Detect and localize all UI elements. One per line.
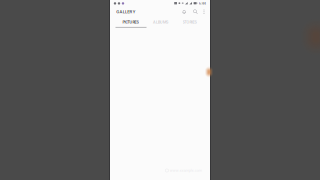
button[interactable]: PICTURES [122,20,138,24]
button[interactable]: Search [193,9,198,14]
staticText: STORIES [182,20,196,24]
button[interactable]: GALLERY [116,9,136,14]
staticText: www.example.com [170,168,202,173]
staticText: PICTURES [122,20,138,24]
button[interactable]: ALBUMS [153,20,168,24]
staticText: GALLERY [116,9,136,14]
button[interactable]: STORIES [182,20,196,24]
staticText: 6:44 [199,1,206,6]
button[interactable]: Notifications [182,9,187,14]
staticText: ALBUMS [153,20,168,24]
button[interactable]: More options [203,9,205,14]
